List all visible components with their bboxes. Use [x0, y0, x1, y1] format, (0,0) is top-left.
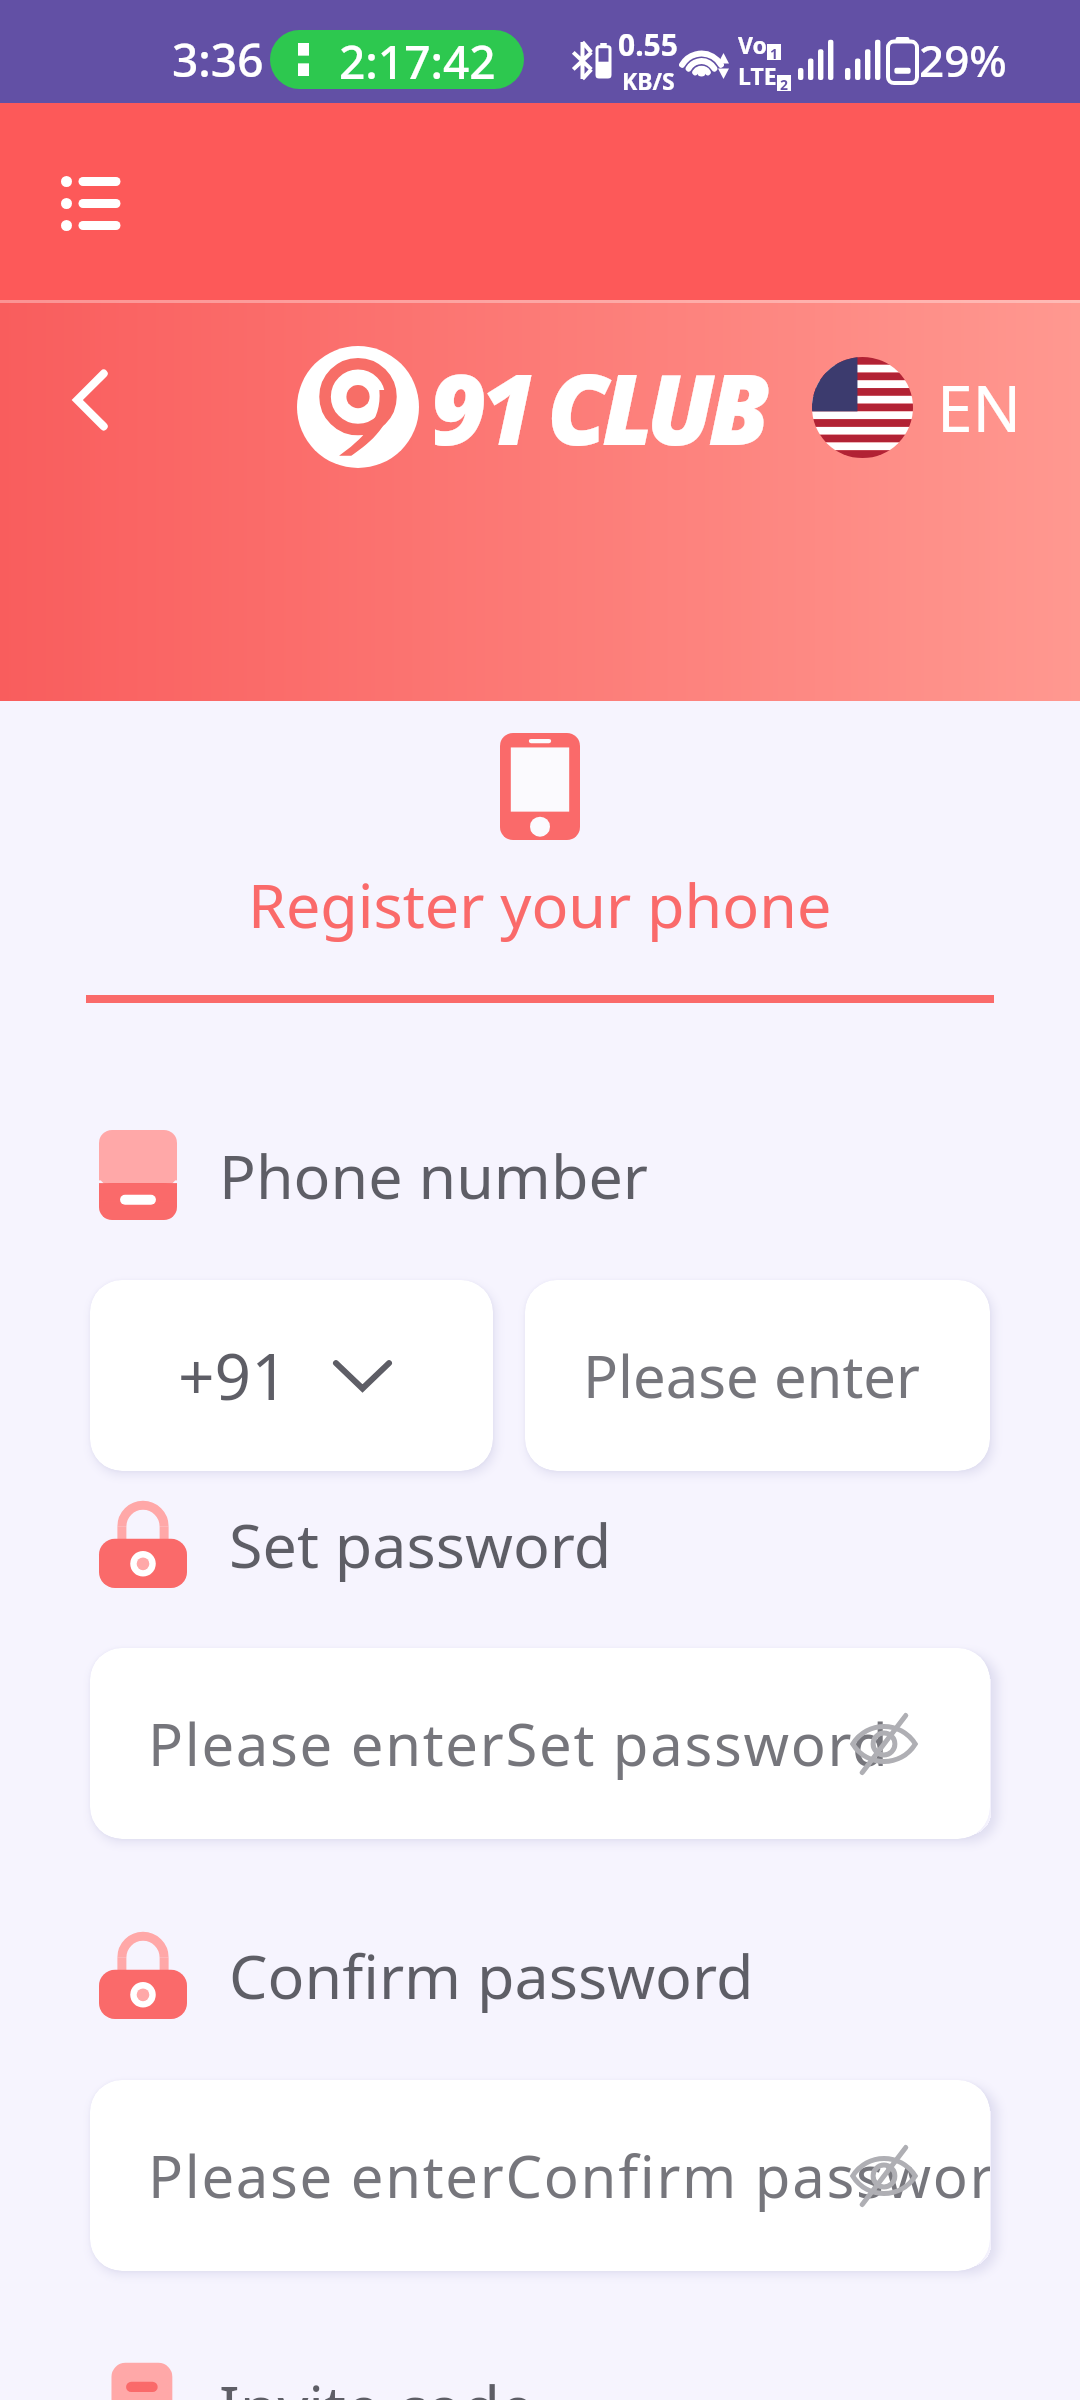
staticText: Please enterConfirm password [148, 2136, 962, 2215]
staticText: Vo [738, 29, 767, 60]
staticText: +91 [178, 1332, 288, 1419]
button[interactable]: Please enterSet password [90, 1648, 990, 1839]
staticText: EN [937, 364, 1022, 451]
staticText: LTE [738, 60, 777, 91]
button[interactable]: Menu [30, 143, 150, 263]
staticText: CLUB [547, 341, 764, 473]
staticText: 0.55 [618, 24, 678, 65]
button[interactable]: Show password [848, 2140, 920, 2212]
button[interactable]: Show password [848, 1708, 920, 1780]
staticText: KB/S [622, 65, 675, 96]
staticText: Please enterSet password [148, 1704, 890, 1783]
staticText: 3:36 [172, 28, 264, 91]
staticText: 1 [770, 44, 779, 60]
staticText: Phone number [219, 1134, 649, 1217]
staticText: Invite code [219, 2365, 535, 2400]
staticText: Confirm password [229, 1934, 754, 2017]
button[interactable]: +91 [90, 1280, 493, 1471]
staticText: 2:17:42 [339, 30, 496, 89]
button[interactable]: Please enterConfirm password [90, 2080, 990, 2271]
staticText: 29% [919, 30, 1007, 90]
staticText: Please enter the phone number [583, 1336, 932, 1415]
button[interactable]: Back [30, 340, 150, 460]
staticText: 91 [430, 341, 531, 473]
staticText: 2 [780, 75, 789, 91]
staticText: Set password [229, 1503, 612, 1586]
button[interactable]: Please enter the phone number [525, 1280, 990, 1471]
staticText: Register your phone [248, 863, 832, 946]
